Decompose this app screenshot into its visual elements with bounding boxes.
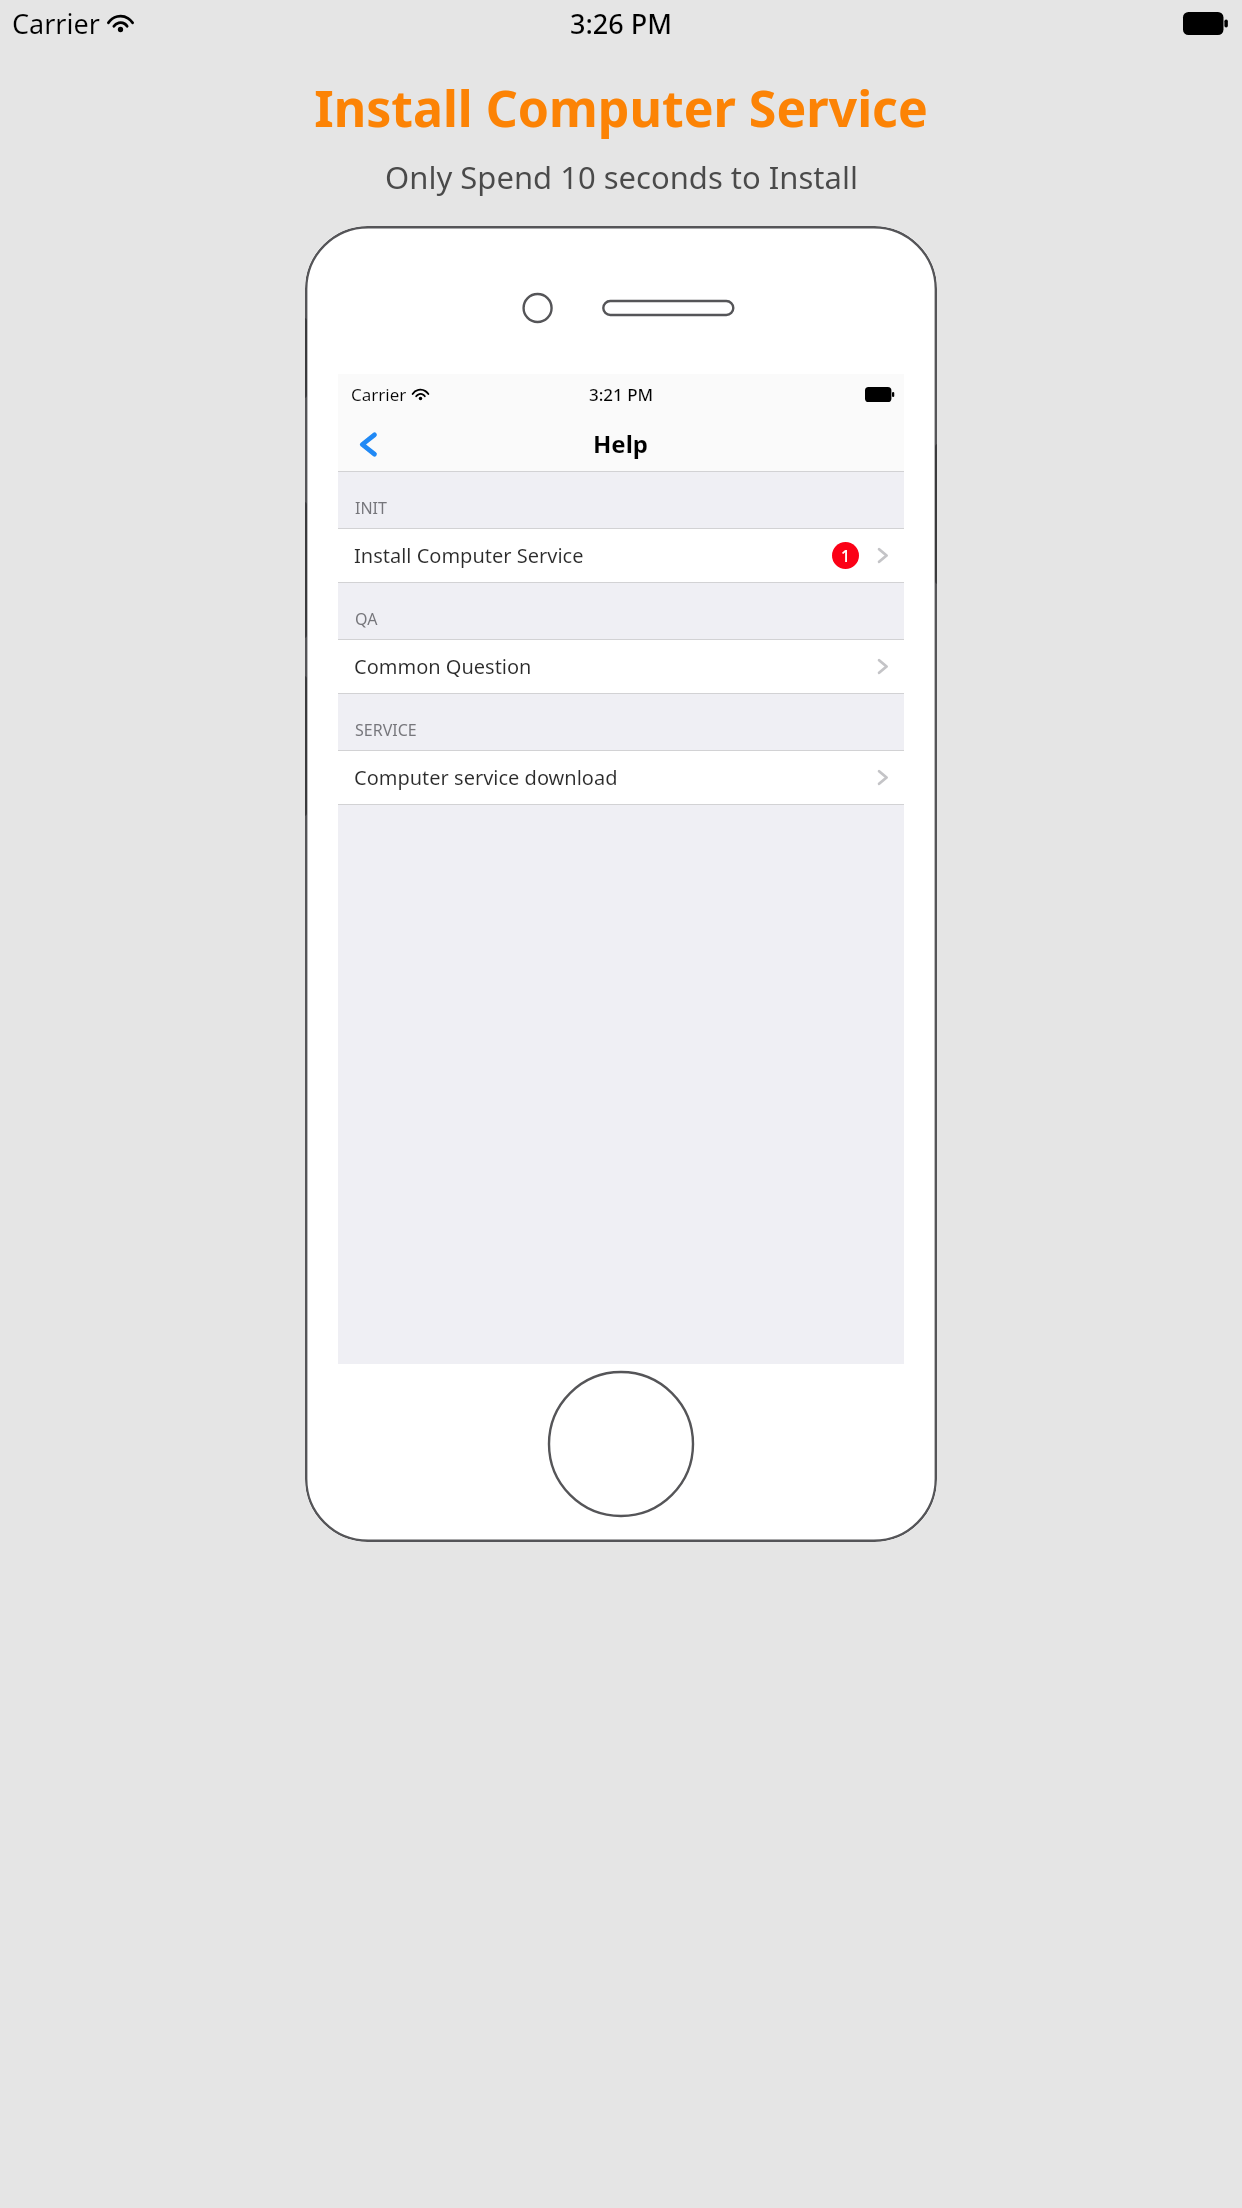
staticText: INIT <box>355 497 387 519</box>
staticText: Install Computer Service <box>354 542 584 569</box>
staticText: Computer service download <box>354 764 618 791</box>
button[interactable]: Install Computer Service <box>338 528 904 583</box>
staticText: Install Computer Service <box>314 74 928 142</box>
staticText: 1 <box>841 545 851 567</box>
staticText: Help <box>593 427 649 460</box>
staticText: Carrier <box>12 5 100 42</box>
staticText: Carrier <box>351 383 407 406</box>
staticText: 3:26 PM <box>570 5 672 42</box>
button[interactable]: Computer service download <box>338 750 904 805</box>
staticText: Common Question <box>354 653 532 680</box>
staticText: 3:21 PM <box>589 383 654 406</box>
button[interactable]: Back <box>342 418 394 470</box>
button[interactable]: Common Question <box>338 639 904 694</box>
staticText: Only Spend 10 seconds to Install <box>385 156 858 198</box>
staticText: SERVICE <box>355 719 417 741</box>
staticText: QA <box>355 608 378 630</box>
